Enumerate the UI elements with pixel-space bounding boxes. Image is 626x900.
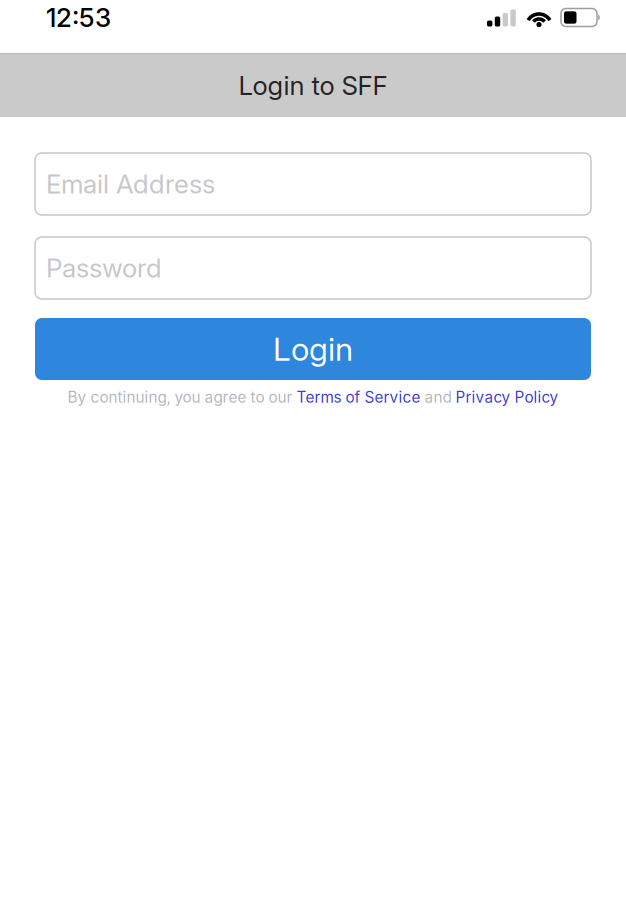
staticText: Terms of Service: [296, 388, 420, 407]
staticText: By continuing, you agree to our: [67, 388, 296, 407]
button[interactable]: Login: [35, 318, 591, 380]
button[interactable]: Privacy Policy: [455, 388, 558, 407]
staticText: 12:53: [46, 2, 111, 33]
button[interactable]: Password: [35, 237, 591, 299]
staticText: and: [420, 388, 455, 407]
button[interactable]: Email Address: [35, 153, 591, 215]
staticText: Password: [46, 252, 162, 284]
staticText: Email Address: [46, 168, 215, 200]
button[interactable]: Terms of Service: [296, 388, 420, 407]
staticText: Login to SFF: [238, 70, 387, 101]
staticText: Login: [273, 330, 353, 368]
staticText: Privacy Policy: [455, 388, 558, 407]
